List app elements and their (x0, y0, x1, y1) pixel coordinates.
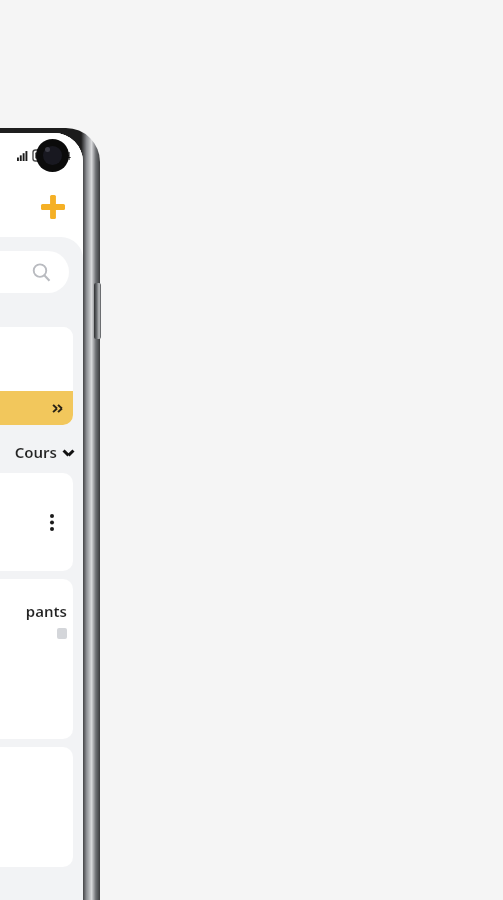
button[interactable]: More options (39, 509, 65, 535)
button[interactable]: Search (0, 251, 69, 293)
button[interactable] (0, 327, 73, 425)
other: Power button (94, 283, 101, 339)
button[interactable]: More options (0, 473, 73, 571)
staticText: 44 (58, 148, 71, 163)
button[interactable]: pants (0, 579, 73, 739)
button[interactable]: Add (29, 183, 77, 231)
staticText: pants (25, 601, 67, 621)
button[interactable]: Cours (0, 437, 75, 467)
staticText: Cours (14, 442, 57, 462)
